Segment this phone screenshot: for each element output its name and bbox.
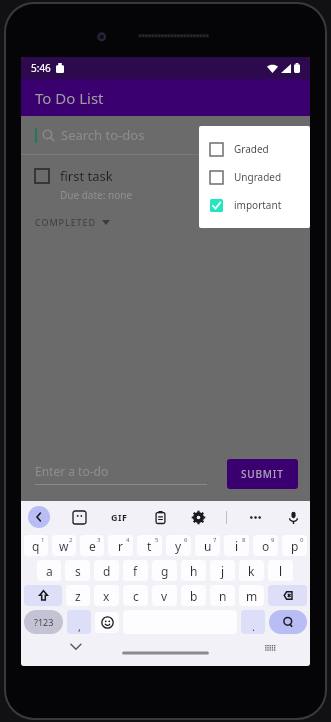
- staticText: Search to-dos: [61, 126, 145, 144]
- button[interactable]: Settings: [188, 507, 208, 527]
- staticText: 9: [271, 536, 275, 544]
- staticText: Ungraded: [234, 170, 282, 184]
- staticText: s: [75, 563, 81, 579]
- button[interactable]: Backspace: [268, 585, 307, 606]
- staticText: u: [204, 538, 212, 554]
- button[interactable]: p: [282, 535, 307, 556]
- staticText: n: [219, 588, 227, 604]
- staticText: 4: [126, 536, 130, 544]
- staticText: Due date: none: [60, 188, 133, 202]
- staticText: j: [221, 563, 225, 579]
- button[interactable]: ,: [67, 610, 91, 634]
- staticText: 5: [155, 536, 159, 544]
- button[interactable]: d: [94, 560, 119, 581]
- staticText: 3: [97, 536, 101, 544]
- button[interactable]: j: [210, 560, 235, 581]
- button[interactable]: g: [152, 560, 177, 581]
- staticText: 5:46: [31, 61, 51, 75]
- button[interactable]: More: [245, 507, 265, 527]
- staticText: ?123: [34, 616, 54, 628]
- button[interactable]: Search: [269, 610, 307, 634]
- staticText: l: [279, 563, 283, 579]
- button[interactable]: v: [152, 585, 177, 606]
- button[interactable]: important: [199, 191, 310, 219]
- staticText: ,: [78, 619, 81, 634]
- staticText: 1: [41, 536, 45, 544]
- button[interactable]: f: [123, 560, 148, 581]
- staticText: 8: [242, 536, 246, 544]
- button[interactable]: GIF: [108, 508, 131, 526]
- button[interactable]: n: [210, 585, 235, 606]
- staticText: h: [190, 563, 198, 579]
- button[interactable]: Enter a to-do: [35, 463, 221, 485]
- staticText: y: [175, 538, 182, 554]
- staticText: COMPLETED: [35, 216, 96, 228]
- staticText: i: [235, 538, 239, 554]
- button[interactable]: Graded: [199, 135, 310, 163]
- staticText: important: [234, 198, 282, 212]
- staticText: w: [59, 538, 69, 554]
- staticText: f: [133, 563, 138, 579]
- staticText: g: [161, 563, 169, 579]
- button[interactable]: x: [94, 585, 119, 606]
- button[interactable]: y: [166, 535, 191, 556]
- staticText: .: [252, 619, 255, 634]
- staticText: x: [103, 588, 110, 604]
- button[interactable]: Clear search: [217, 124, 239, 146]
- button[interactable]: Clipboard: [150, 507, 170, 527]
- staticText: 2: [69, 536, 73, 544]
- button[interactable]: l: [268, 560, 293, 581]
- button[interactable]: Stickers: [69, 507, 89, 527]
- staticText: first task: [60, 167, 113, 185]
- staticText: 6: [184, 536, 188, 544]
- button[interactable]: s: [65, 560, 90, 581]
- button[interactable]: .: [241, 610, 265, 634]
- button[interactable]: ?123: [24, 610, 63, 634]
- button[interactable]: r: [108, 535, 133, 556]
- staticText: m: [246, 588, 258, 604]
- button[interactable]: Shift: [24, 585, 62, 606]
- staticText: a: [46, 563, 53, 579]
- staticText: SUBMIT: [241, 467, 284, 481]
- button[interactable]: t: [137, 535, 162, 556]
- staticText: Enter a to-do: [35, 463, 109, 479]
- button[interactable]: a: [37, 560, 61, 581]
- button[interactable]: k: [239, 560, 264, 581]
- button[interactable]: i: [224, 535, 249, 556]
- button[interactable]: FILTERS: [249, 124, 298, 146]
- staticText: p: [291, 538, 299, 554]
- button[interactable]: Voice input: [283, 507, 303, 527]
- button[interactable]: COMPLETED: [21, 214, 118, 230]
- staticText: To Do List: [35, 88, 104, 108]
- staticText: o: [262, 538, 270, 554]
- button[interactable]: SUBMIT: [227, 459, 298, 489]
- staticText: z: [75, 588, 81, 604]
- button[interactable]: Ungraded: [199, 163, 310, 191]
- staticText: v: [161, 588, 168, 604]
- staticText: t: [147, 538, 152, 554]
- staticText: 0: [300, 536, 304, 544]
- staticText: e: [89, 538, 96, 554]
- staticText: d: [103, 563, 111, 579]
- staticText: q: [32, 538, 40, 554]
- button[interactable]: o: [253, 535, 278, 556]
- button[interactable]: first task: [21, 165, 310, 202]
- staticText: r: [118, 538, 123, 554]
- button[interactable]: c: [123, 585, 148, 606]
- button[interactable]: q: [24, 535, 48, 556]
- button[interactable]: h: [181, 560, 206, 581]
- button[interactable]: m: [239, 585, 264, 606]
- staticText: c: [133, 588, 139, 604]
- button[interactable]: Emoji: [95, 612, 119, 633]
- button[interactable]: b: [181, 585, 206, 606]
- staticText: b: [190, 588, 198, 604]
- staticText: Graded: [234, 142, 269, 156]
- button[interactable]: e: [80, 535, 104, 556]
- button[interactable]: u: [195, 535, 220, 556]
- button[interactable]: Back: [28, 506, 50, 528]
- button[interactable]: w: [52, 535, 76, 556]
- staticText: GIF: [111, 511, 128, 523]
- button[interactable]: z: [66, 585, 90, 606]
